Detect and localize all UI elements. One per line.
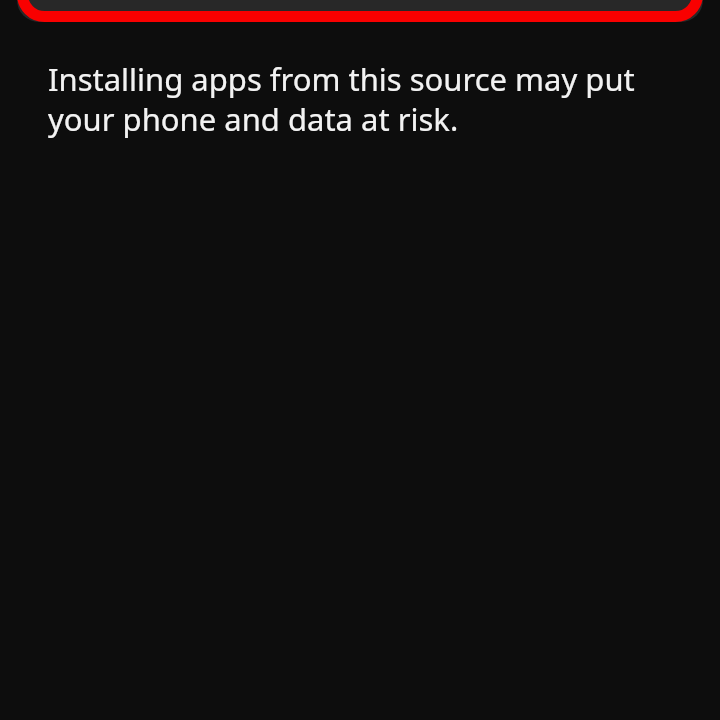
button[interactable]: Unknown source warning xyxy=(0,0,720,22)
staticText: Installing apps from this source may put… xyxy=(48,58,660,140)
